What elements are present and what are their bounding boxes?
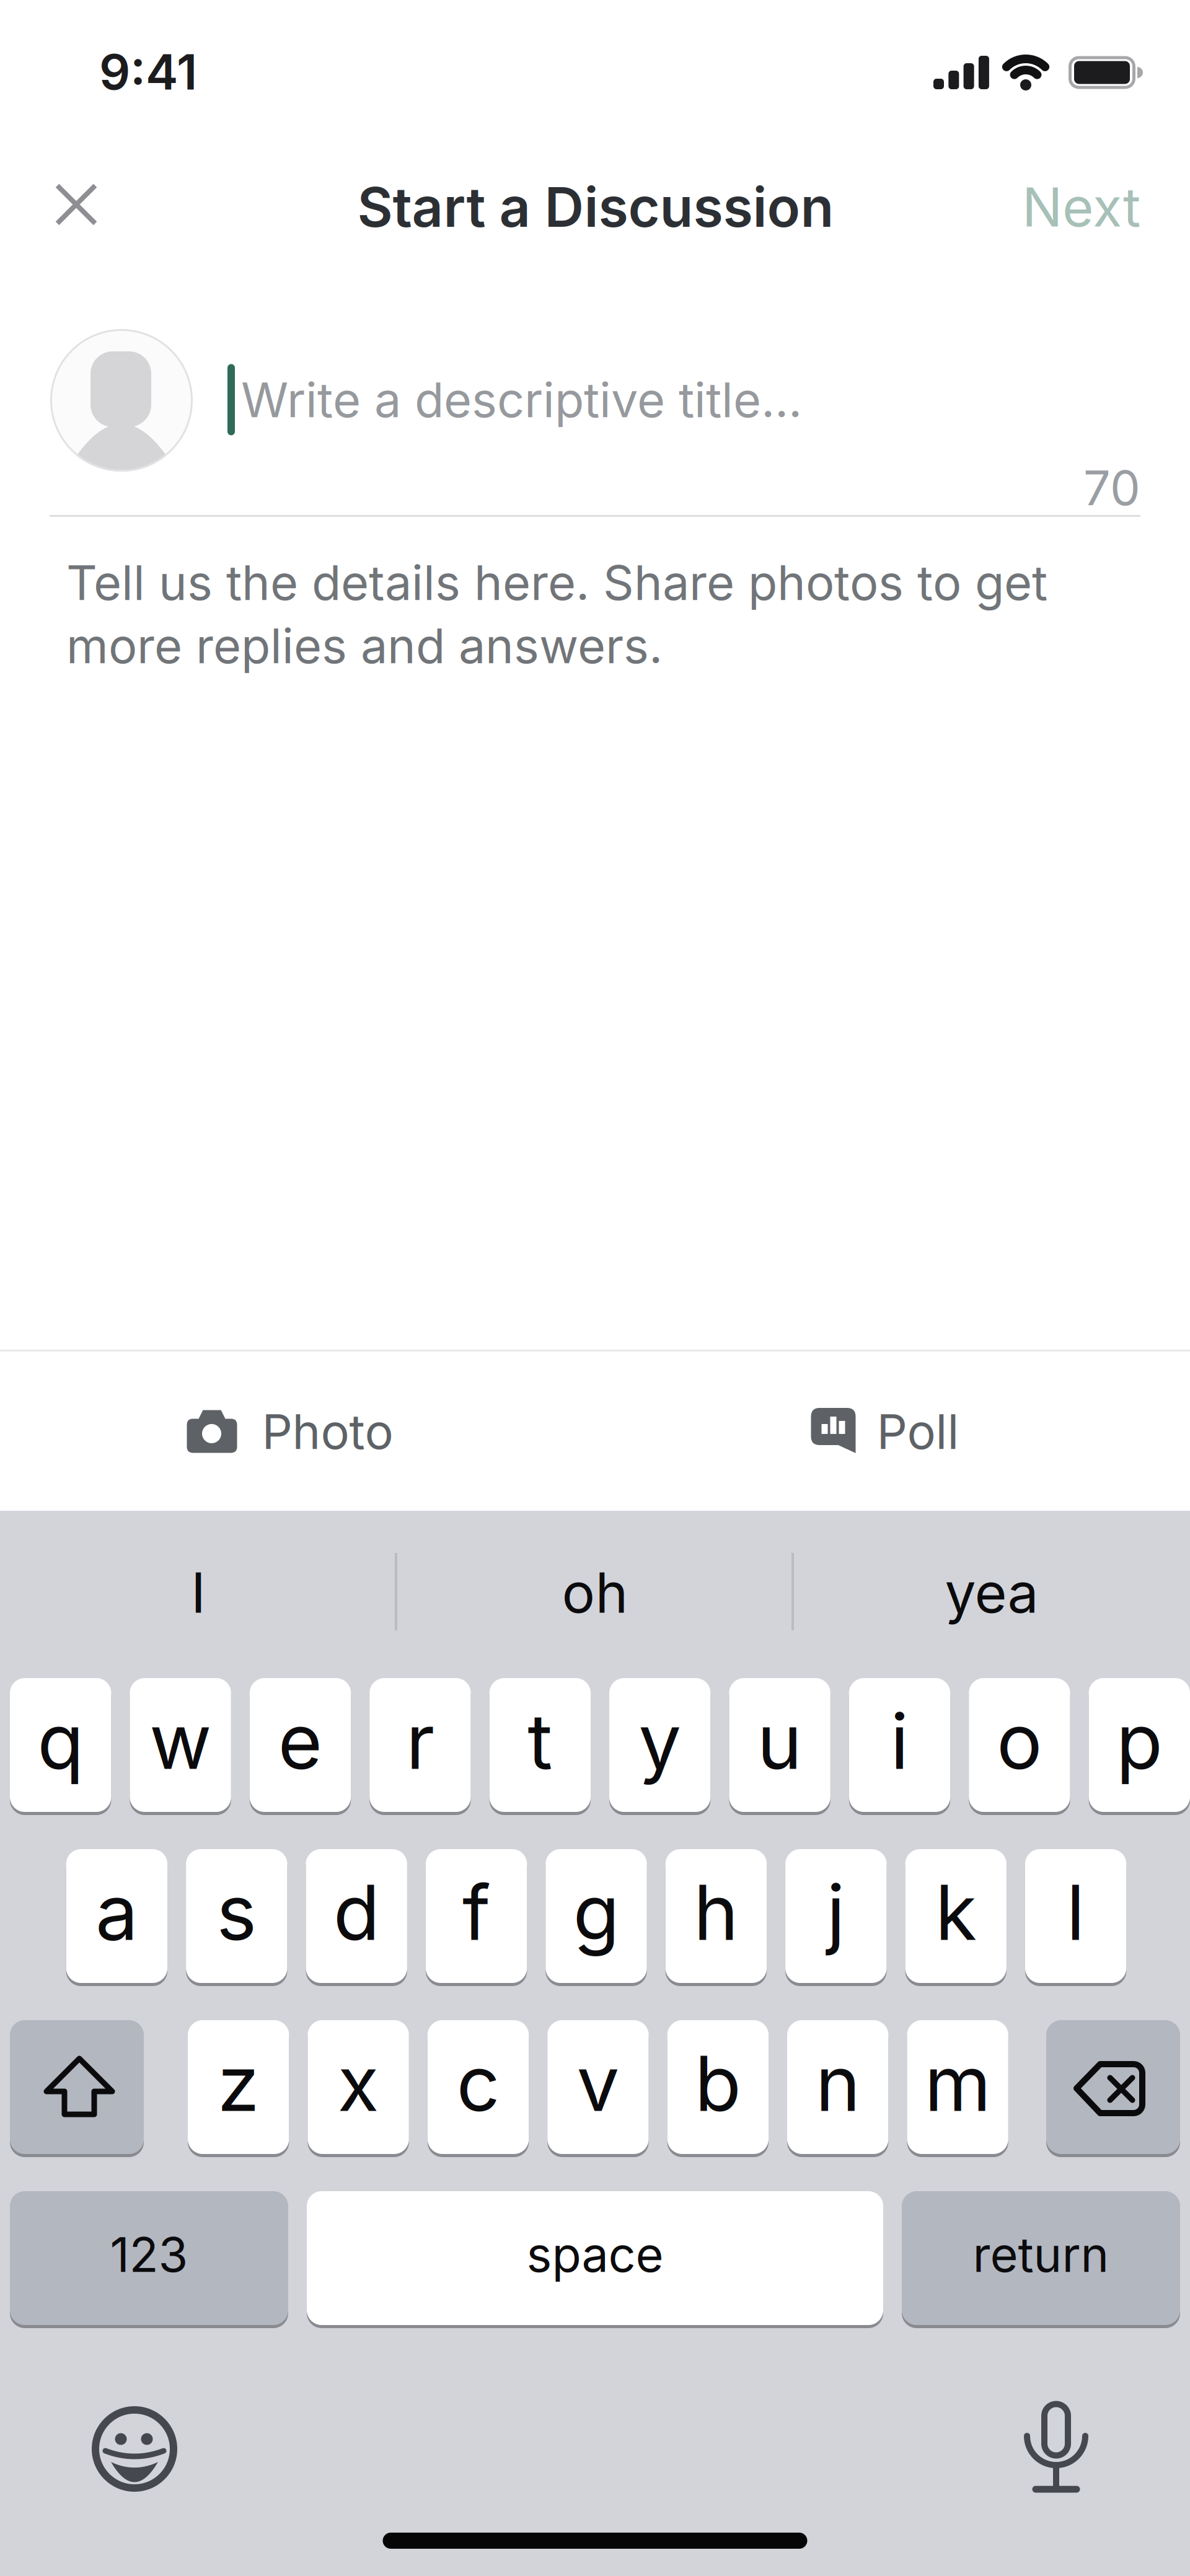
staticText: n bbox=[815, 2037, 860, 2129]
staticText: e bbox=[278, 1695, 323, 1787]
staticText: Start a Discussion bbox=[357, 175, 834, 239]
staticText: 70 bbox=[1083, 459, 1140, 516]
staticText: Write a descriptive title... bbox=[241, 371, 802, 428]
button[interactable]: z bbox=[188, 2020, 289, 2154]
staticText: yea bbox=[945, 1559, 1038, 1626]
button[interactable]: m bbox=[907, 2020, 1008, 2154]
staticText: w bbox=[149, 1695, 211, 1787]
button[interactable]: p bbox=[1089, 1678, 1190, 1812]
staticText: z bbox=[217, 2037, 260, 2129]
staticText: 9:41 bbox=[99, 43, 197, 101]
button[interactable]: d bbox=[306, 1849, 407, 1983]
staticText: i bbox=[890, 1695, 909, 1787]
button[interactable]: 123 bbox=[10, 2191, 288, 2325]
staticText: a bbox=[95, 1866, 138, 1958]
button[interactable]: return bbox=[902, 2191, 1180, 2325]
staticText: space bbox=[527, 2225, 663, 2283]
button[interactable]: i bbox=[849, 1678, 950, 1812]
button[interactable]: Dictation bbox=[1000, 2399, 1112, 2523]
button[interactable]: w bbox=[130, 1678, 231, 1812]
button[interactable]: Poll bbox=[761, 1376, 1009, 1487]
staticText: s bbox=[216, 1866, 257, 1958]
button[interactable]: l bbox=[1025, 1849, 1126, 1983]
button[interactable]: y bbox=[609, 1678, 711, 1812]
staticText: 123 bbox=[110, 2225, 188, 2283]
button[interactable]: g bbox=[546, 1849, 647, 1983]
staticText: c bbox=[456, 2037, 500, 2129]
button[interactable]: space bbox=[307, 2191, 883, 2325]
staticText: Tell us the details here. Share photos t… bbox=[66, 554, 1047, 611]
button[interactable]: f bbox=[426, 1849, 527, 1983]
staticText: more replies and answers. bbox=[66, 617, 663, 674]
button[interactable]: j bbox=[785, 1849, 887, 1983]
staticText: t bbox=[528, 1695, 552, 1787]
staticText: v bbox=[577, 2037, 619, 2129]
staticText: g bbox=[573, 1866, 619, 1958]
staticText: u bbox=[757, 1695, 802, 1787]
button[interactable]: r bbox=[370, 1678, 471, 1812]
staticText: y bbox=[639, 1695, 681, 1787]
button[interactable]: I bbox=[25, 1549, 372, 1636]
button[interactable]: yea bbox=[818, 1549, 1165, 1636]
button[interactable]: u bbox=[729, 1678, 830, 1812]
staticText: Next bbox=[1022, 175, 1140, 239]
button[interactable]: oh bbox=[421, 1549, 769, 1636]
button[interactable]: q bbox=[10, 1678, 111, 1812]
staticText: h bbox=[693, 1866, 739, 1958]
button[interactable]: s bbox=[186, 1849, 287, 1983]
button[interactable]: Photo bbox=[141, 1376, 439, 1487]
button[interactable]: Delete bbox=[1046, 2020, 1180, 2154]
staticText: j bbox=[827, 1866, 845, 1958]
button[interactable]: Next bbox=[0, 0, 1190, 2576]
button[interactable]: v bbox=[547, 2020, 649, 2154]
staticText: f bbox=[462, 1866, 490, 1958]
staticText: o bbox=[997, 1695, 1042, 1787]
button[interactable]: o bbox=[969, 1678, 1070, 1812]
staticText: b bbox=[695, 2037, 741, 2129]
button[interactable]: e bbox=[250, 1678, 351, 1812]
button[interactable]: b bbox=[667, 2020, 769, 2154]
staticText: q bbox=[37, 1695, 84, 1787]
staticText: d bbox=[333, 1866, 380, 1958]
button[interactable]: Close bbox=[36, 164, 117, 245]
button[interactable]: c bbox=[428, 2020, 529, 2154]
staticText: m bbox=[924, 2037, 991, 2129]
staticText: p bbox=[1116, 1695, 1163, 1787]
staticText: x bbox=[338, 2037, 379, 2129]
button[interactable]: Emoji bbox=[79, 2393, 190, 2505]
staticText: Photo bbox=[262, 1403, 393, 1460]
button[interactable]: x bbox=[308, 2020, 409, 2154]
button[interactable]: t bbox=[489, 1678, 591, 1812]
staticText: return bbox=[973, 2225, 1109, 2283]
button[interactable]: a bbox=[66, 1849, 167, 1983]
button[interactable]: Shift bbox=[10, 2020, 144, 2154]
button[interactable]: k bbox=[905, 1849, 1006, 1983]
staticText: l bbox=[1066, 1866, 1085, 1958]
staticText: k bbox=[935, 1866, 977, 1958]
staticText: r bbox=[406, 1695, 434, 1787]
staticText: Poll bbox=[877, 1403, 959, 1460]
staticText: oh bbox=[562, 1559, 628, 1626]
button[interactable]: h bbox=[665, 1849, 767, 1983]
staticText: I bbox=[191, 1559, 206, 1626]
button[interactable]: n bbox=[787, 2020, 888, 2154]
